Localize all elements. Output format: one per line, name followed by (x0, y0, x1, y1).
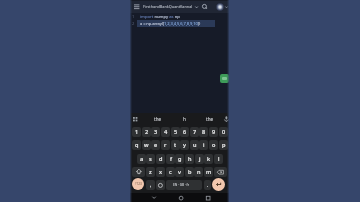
staticText: u (193, 141, 197, 149)
staticText: g (178, 155, 182, 163)
staticText: w (144, 141, 149, 149)
staticText: the (206, 116, 214, 122)
staticText: b (188, 168, 192, 176)
staticText: h (183, 116, 186, 122)
staticText: the (154, 116, 162, 122)
staticText: 1 (135, 128, 139, 136)
staticText: import numpy as np (140, 14, 180, 20)
staticText: r (164, 141, 167, 149)
staticText: 6 (183, 128, 187, 136)
staticText: t (174, 141, 177, 149)
staticText: 2 (132, 21, 135, 27)
staticText: n (197, 168, 201, 176)
staticText: FirsthandBankQuantKannal (143, 4, 193, 9)
staticText: a (140, 155, 144, 163)
staticText: v (178, 168, 181, 176)
staticText: x (159, 168, 163, 176)
staticText: ?123 (135, 182, 142, 186)
staticText: , (150, 182, 152, 189)
staticText: c (169, 168, 172, 176)
staticText: 7 (193, 128, 197, 136)
staticText: 5 (174, 128, 178, 136)
staticText: 4 (164, 128, 168, 136)
staticText: q (135, 141, 139, 149)
staticText: f (170, 155, 172, 163)
staticText: m (206, 168, 212, 176)
staticText: l (218, 155, 220, 163)
staticText: 8 (202, 128, 206, 136)
staticText: 9 (212, 128, 216, 136)
staticText: h (188, 155, 192, 163)
staticText: EN · GB · fr (173, 183, 190, 187)
staticText: 0 (222, 128, 226, 136)
staticText: 1 (132, 14, 135, 20)
staticText: . (207, 182, 209, 189)
staticText: p (222, 141, 226, 149)
staticText: 2 (145, 128, 149, 136)
staticText: i (203, 141, 205, 149)
staticText: s (149, 155, 152, 163)
staticText: d (159, 155, 163, 163)
staticText: z (149, 168, 152, 176)
staticText: a = np.array([1,2,3,4,5,6,7,8,9,10]) (140, 21, 201, 27)
staticText: e (154, 141, 158, 149)
staticText: k (207, 155, 211, 163)
staticText: 3 (154, 128, 158, 136)
staticText: y (183, 141, 186, 149)
staticText: o (212, 141, 216, 149)
staticText: j (199, 155, 201, 163)
